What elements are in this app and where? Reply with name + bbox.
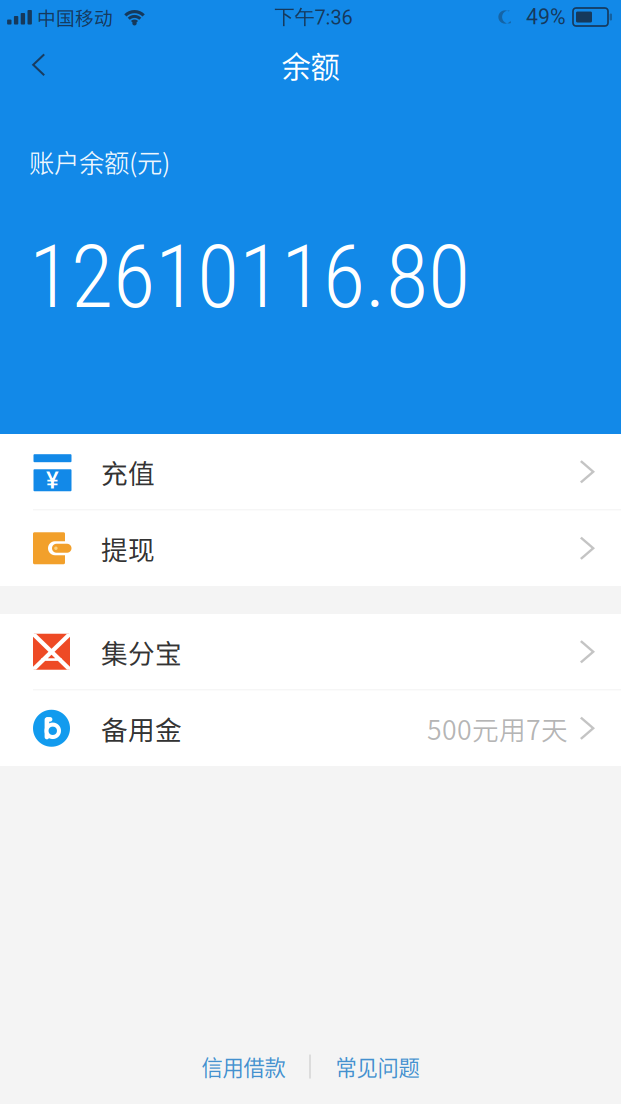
- staticText: 下午7:36: [274, 4, 352, 30]
- button[interactable]: 提现: [0, 510, 621, 586]
- staticText: 49%: [526, 4, 566, 29]
- staticText: ¥: [46, 466, 59, 494]
- button[interactable]: 集分宝: [0, 614, 621, 689]
- button[interactable]: ¥: [0, 434, 621, 509]
- staticText: 500元用7天: [427, 709, 568, 747]
- button[interactable]: 信用借款: [201, 1051, 285, 1082]
- staticText: 中国移动: [37, 3, 113, 30]
- button[interactable]: 常见问题: [336, 1051, 420, 1082]
- staticText: 账户余额(元): [29, 143, 170, 180]
- button[interactable]: 返回: [0, 36, 76, 94]
- staticText: 信用借款: [201, 1051, 285, 1082]
- staticText: 集分宝: [101, 632, 182, 671]
- staticText: 备用金: [101, 709, 182, 747]
- staticText: 提现: [101, 529, 155, 567]
- staticText: 常见问题: [336, 1051, 420, 1082]
- staticText: 12610116.80: [29, 227, 470, 328]
- staticText: 充值: [101, 452, 155, 491]
- staticText: 余额: [281, 44, 339, 86]
- button[interactable]: 备用金: [0, 690, 621, 766]
